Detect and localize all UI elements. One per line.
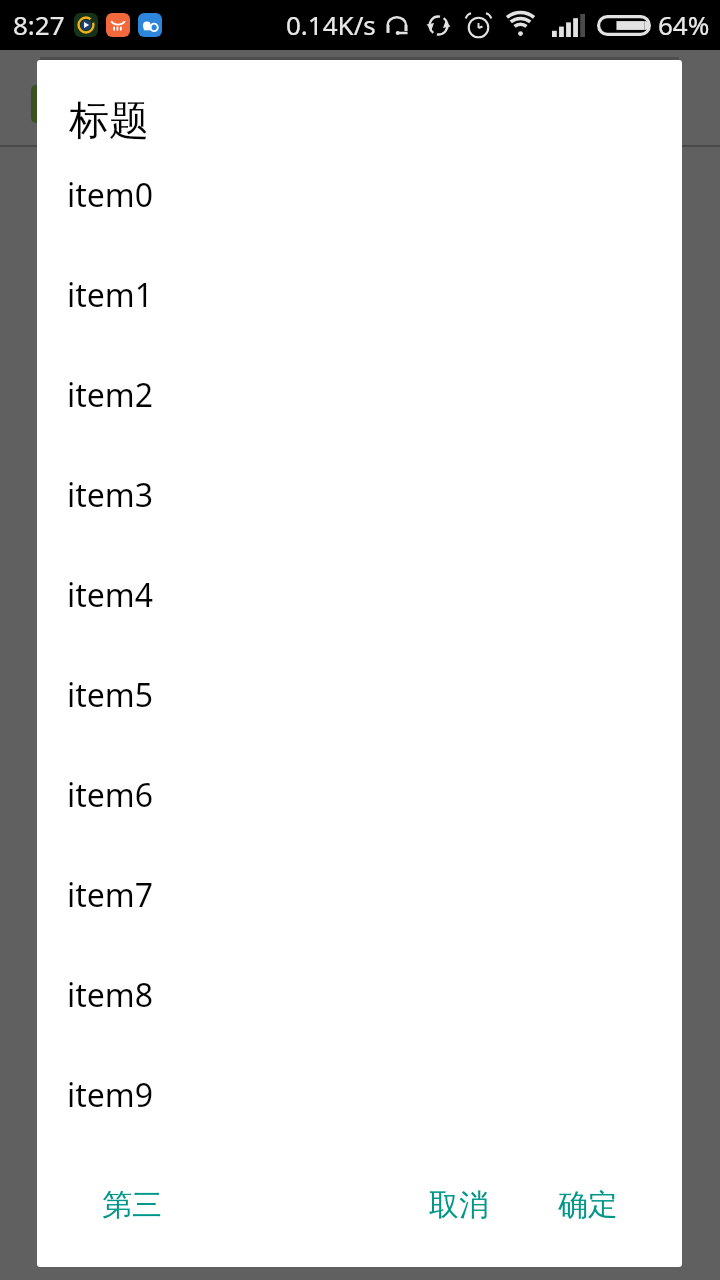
other: Mobile signal [552, 14, 585, 37]
staticText: item7 [67, 873, 154, 917]
button[interactable]: item4 [37, 545, 682, 645]
button[interactable]: item3 [37, 445, 682, 545]
staticText: item3 [67, 473, 154, 517]
staticText: item9 [67, 1073, 154, 1117]
other: Music player notification [74, 13, 98, 37]
other: Battery 64 percent [597, 15, 651, 36]
staticText: item1 [67, 273, 154, 317]
staticText: item4 [67, 573, 154, 617]
button[interactable]: item7 [37, 845, 682, 945]
staticText: 第三 [102, 1186, 162, 1224]
staticText: item5 [67, 673, 154, 717]
staticText: 取消 [429, 1186, 489, 1224]
staticText: 0.14K/s [286, 7, 376, 42]
button[interactable]: item5 [37, 645, 682, 745]
staticText: item2 [67, 373, 154, 417]
staticText: 64% [658, 7, 710, 42]
staticText: 标题 [69, 95, 149, 145]
button[interactable]: item8 [37, 945, 682, 1045]
button[interactable]: item2 [37, 345, 682, 445]
staticText: item8 [67, 973, 154, 1017]
other: Syncing [426, 13, 451, 38]
other: Store notification [106, 13, 130, 37]
staticText: 确定 [558, 1186, 618, 1224]
other: Alarm set [466, 13, 491, 38]
button[interactable]: 确定 [544, 1174, 632, 1236]
staticText: item0 [67, 173, 154, 217]
other: Cloud sync notification [138, 13, 162, 37]
button[interactable]: item9 [37, 1045, 682, 1145]
other: Wi-Fi signal [505, 12, 536, 39]
button[interactable]: item1 [37, 245, 682, 345]
staticText: item6 [67, 773, 154, 817]
button[interactable]: item0 [37, 145, 682, 245]
other: Headset connected [385, 13, 409, 37]
button[interactable]: 取消 [415, 1174, 503, 1236]
button[interactable]: 第三 [88, 1174, 176, 1236]
button[interactable]: item6 [37, 745, 682, 845]
staticText: 8:27 [13, 7, 65, 42]
